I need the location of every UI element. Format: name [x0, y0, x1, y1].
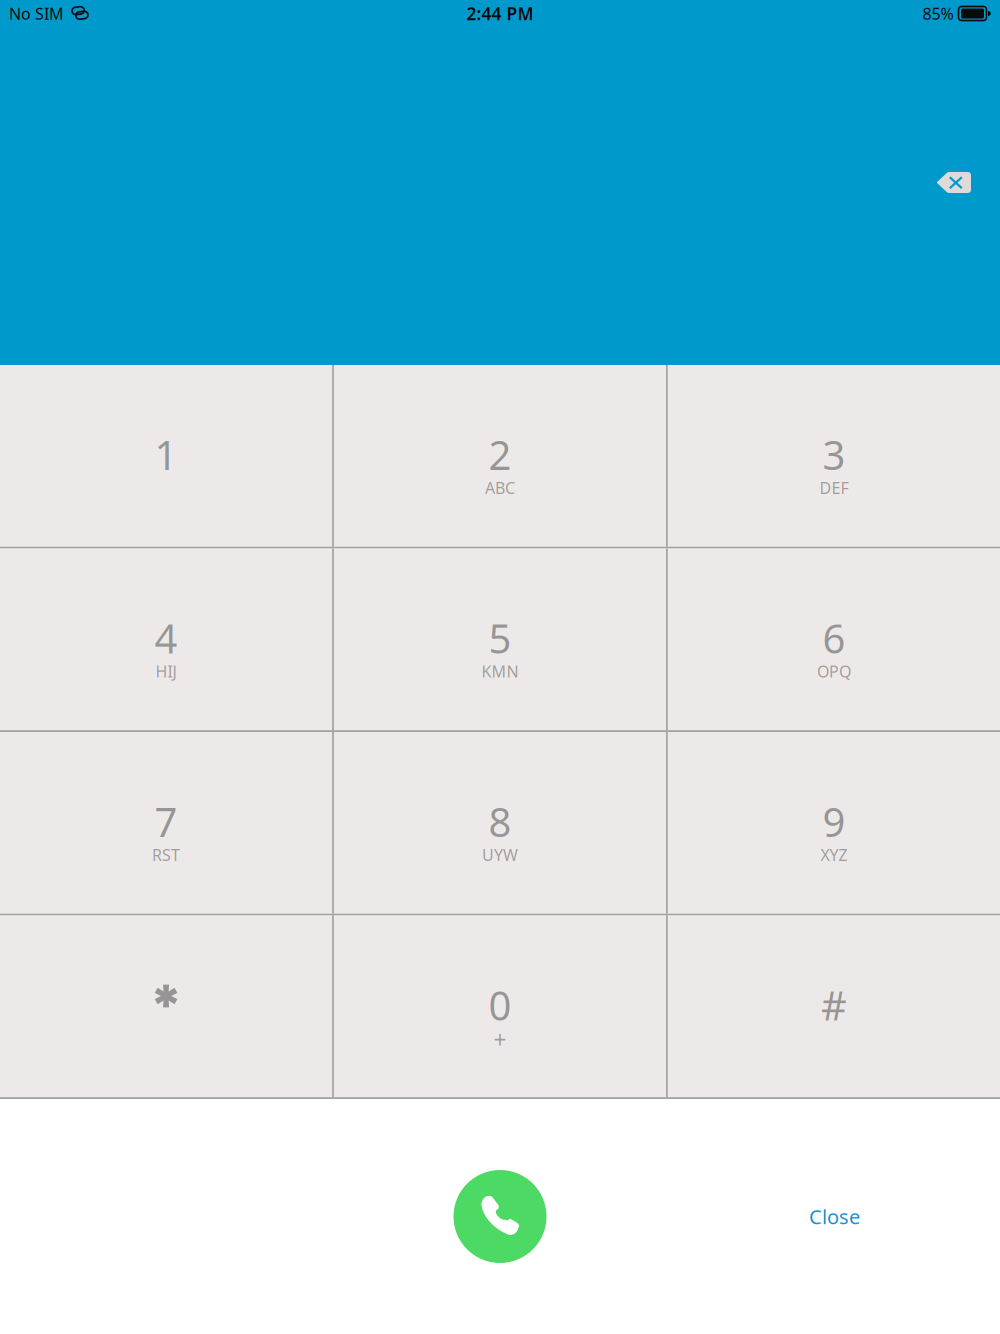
- staticText: 2:44 PM: [466, 2, 533, 25]
- staticText: 3: [822, 428, 845, 481]
- staticText: No SIM: [9, 3, 64, 24]
- button[interactable]: 4: [0, 548, 332, 730]
- staticText: 85%: [922, 3, 953, 24]
- staticText: 1: [155, 428, 178, 481]
- staticText: 5: [488, 611, 511, 665]
- staticText: XYZ: [820, 844, 847, 865]
- staticText: 8: [488, 795, 511, 848]
- staticText: #: [821, 978, 847, 1032]
- staticText: DEF: [819, 477, 848, 498]
- staticText: 4: [155, 611, 178, 665]
- staticText: OPQ: [817, 661, 851, 682]
- staticText: +: [493, 1025, 506, 1055]
- button[interactable]: 1: [0, 365, 332, 547]
- staticText: Close: [809, 1203, 860, 1230]
- staticText: 6: [822, 611, 845, 665]
- button[interactable]: 9: [668, 732, 1000, 914]
- button[interactable]: 5: [334, 548, 666, 730]
- button[interactable]: 3: [668, 365, 1000, 547]
- button[interactable]: 8: [334, 732, 666, 914]
- button[interactable]: Close: [785, 1187, 884, 1246]
- staticText: 0: [488, 978, 511, 1032]
- button[interactable]: 6: [668, 548, 1000, 730]
- button[interactable]: #: [668, 915, 1000, 1097]
- button[interactable]: 2: [334, 365, 666, 547]
- staticText: 9: [822, 795, 845, 848]
- staticText: HIJ: [156, 661, 177, 682]
- staticText: KMN: [481, 661, 518, 682]
- staticText: ABC: [485, 477, 515, 498]
- staticText: 2: [488, 428, 511, 481]
- staticText: RST: [152, 844, 180, 865]
- staticText: UYW: [482, 844, 518, 865]
- button[interactable]: Call: [453, 1170, 546, 1263]
- button[interactable]: 7: [0, 732, 332, 914]
- button[interactable]: Delete: [929, 165, 978, 200]
- button[interactable]: [0, 915, 332, 1097]
- button[interactable]: 0: [334, 915, 666, 1097]
- staticText: 7: [155, 795, 178, 848]
